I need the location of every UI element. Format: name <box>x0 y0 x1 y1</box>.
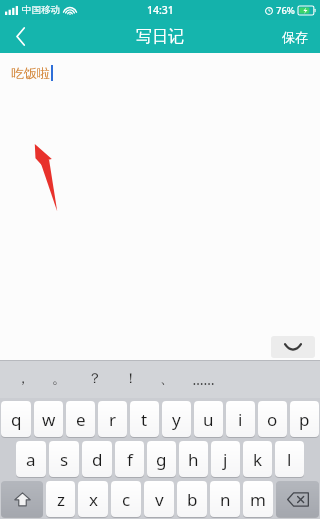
staticText: z <box>57 488 65 511</box>
button[interactable]: o <box>258 401 287 437</box>
button[interactable]: ！ <box>114 360 148 398</box>
button[interactable]: 保存 <box>270 20 320 53</box>
staticText: ， <box>16 370 30 388</box>
staticText: 76% <box>276 4 295 17</box>
staticText: q <box>11 408 22 431</box>
staticText: d <box>92 448 103 471</box>
staticText: 、 <box>160 370 174 388</box>
button[interactable]: n <box>210 481 240 517</box>
button[interactable]: j <box>211 441 240 477</box>
button[interactable]: ， <box>6 360 40 398</box>
button[interactable]: z <box>46 481 75 517</box>
button[interactable]: w <box>34 401 63 437</box>
button[interactable]: r <box>98 401 127 437</box>
staticText: …… <box>192 370 215 389</box>
staticText: o <box>267 408 278 431</box>
staticText: 吃饭啦 <box>11 65 50 81</box>
button[interactable]: Shift <box>1 481 43 517</box>
button[interactable]: p <box>290 401 319 437</box>
staticText: s <box>60 448 69 471</box>
button[interactable]: 、 <box>150 360 184 398</box>
button[interactable]: v <box>144 481 174 517</box>
staticText: 写日记 <box>136 27 184 47</box>
button[interactable]: m <box>243 481 273 517</box>
staticText: 14:31 <box>147 3 174 17</box>
staticText: a <box>26 448 36 471</box>
staticText: x <box>89 488 98 511</box>
button[interactable]: c <box>111 481 141 517</box>
button[interactable]: Backspace <box>276 481 319 517</box>
staticText: l <box>287 448 292 471</box>
button[interactable]: q <box>1 401 31 437</box>
button[interactable]: u <box>194 401 223 437</box>
staticText: 保存 <box>282 29 308 45</box>
button[interactable]: x <box>78 481 108 517</box>
button[interactable]: 吃饭啦 <box>0 53 320 334</box>
staticText: j <box>223 448 228 471</box>
staticText: k <box>253 448 263 471</box>
button[interactable]: s <box>49 441 79 477</box>
staticText: f <box>127 448 133 471</box>
staticText: v <box>155 488 164 511</box>
staticText: g <box>156 448 167 471</box>
button[interactable]: Hide keyboard <box>271 336 315 358</box>
staticText: ！ <box>124 370 138 388</box>
button[interactable]: t <box>130 401 159 437</box>
button[interactable]: h <box>179 441 208 477</box>
button[interactable]: a <box>16 441 46 477</box>
staticText: e <box>76 408 86 431</box>
button[interactable]: 。 <box>42 360 76 398</box>
button[interactable]: i <box>226 401 255 437</box>
button[interactable]: Back <box>0 20 42 53</box>
staticText: b <box>187 488 198 511</box>
button[interactable]: l <box>275 441 304 477</box>
staticText: t <box>141 408 148 431</box>
button[interactable]: b <box>177 481 207 517</box>
staticText: p <box>299 408 310 431</box>
staticText: u <box>203 408 214 431</box>
button[interactable]: k <box>243 441 272 477</box>
staticText: m <box>250 488 266 511</box>
staticText: y <box>172 408 181 431</box>
staticText: c <box>122 488 131 511</box>
staticText: ？ <box>88 370 102 388</box>
button[interactable]: ？ <box>78 360 112 398</box>
button[interactable]: e <box>66 401 95 437</box>
button[interactable]: d <box>82 441 112 477</box>
staticText: r <box>109 408 117 431</box>
staticText: h <box>188 448 199 471</box>
staticText: w <box>42 408 56 431</box>
button[interactable]: g <box>147 441 176 477</box>
staticText: 中国移动 <box>22 4 60 16</box>
staticText: i <box>238 408 243 431</box>
staticText: 。 <box>52 370 66 388</box>
button[interactable]: y <box>162 401 191 437</box>
button[interactable]: f <box>115 441 144 477</box>
staticText: n <box>220 488 231 511</box>
button[interactable]: …… <box>186 360 220 398</box>
